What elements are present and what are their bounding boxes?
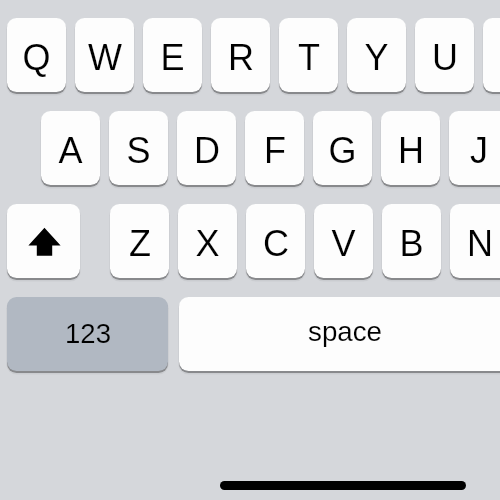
button[interactable]: R [211,18,270,92]
staticText: R [228,37,254,77]
staticText: Y [364,37,389,77]
button[interactable]: Y [347,18,406,92]
button[interactable]: V [314,204,373,278]
staticText: G [328,130,357,170]
button[interactable]: U [415,18,474,92]
button[interactable]: D [177,111,236,185]
button[interactable]: Shift [7,204,80,278]
staticText: C [263,223,289,263]
staticText: T [298,37,320,77]
staticText: N [467,223,493,263]
button[interactable]: C [246,204,305,278]
staticText: space [308,316,382,347]
button[interactable]: I [483,18,500,92]
button[interactable]: space [179,297,500,371]
staticText: U [432,37,458,77]
button[interactable]: W [75,18,134,92]
staticText: Z [129,223,151,263]
button[interactable]: E [143,18,202,92]
staticText: H [398,130,424,170]
staticText: V [331,223,356,263]
staticText: X [195,223,220,263]
button[interactable]: X [178,204,237,278]
button[interactable]: H [381,111,440,185]
button[interactable]: G [313,111,372,185]
staticText: D [194,130,220,170]
staticText: S [126,130,151,170]
button[interactable]: A [41,111,100,185]
staticText: F [264,130,286,170]
staticText: Q [22,37,51,77]
button[interactable]: 123 [7,297,168,371]
staticText: A [58,130,83,170]
button[interactable]: S [109,111,168,185]
staticText: J [470,130,488,170]
staticText: E [160,37,185,77]
staticText: B [399,223,424,263]
button[interactable]: B [382,204,441,278]
button[interactable]: F [245,111,304,185]
button[interactable]: Z [110,204,169,278]
button[interactable]: J [449,111,500,185]
button[interactable]: T [279,18,338,92]
staticText: W [88,37,122,77]
button[interactable]: N [450,204,500,278]
staticText: 123 [65,318,111,349]
button[interactable]: Q [7,18,66,92]
